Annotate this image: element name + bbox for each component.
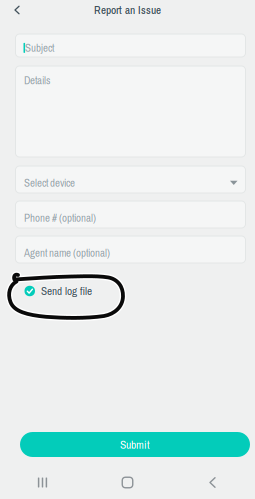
staticText: Phone # (optional) — [24, 210, 96, 225]
staticText: Send log file — [41, 283, 92, 299]
button[interactable]: Select device — [15, 166, 245, 193]
staticText: Details — [24, 73, 50, 88]
button[interactable]: Send log file — [15, 283, 254, 299]
staticText: Report an Issue — [94, 2, 161, 17]
button[interactable]: Back — [0, 0, 34, 20]
button[interactable]: Home — [85, 466, 170, 499]
staticText: Submit — [120, 437, 150, 452]
button[interactable]: Back — [170, 466, 255, 499]
staticText: Agent name (optional) — [24, 245, 110, 260]
button[interactable]: Recent apps — [0, 466, 85, 499]
staticText: Select device — [24, 175, 75, 190]
button[interactable]: Submit — [20, 432, 250, 457]
staticText: Subject — [25, 40, 54, 55]
